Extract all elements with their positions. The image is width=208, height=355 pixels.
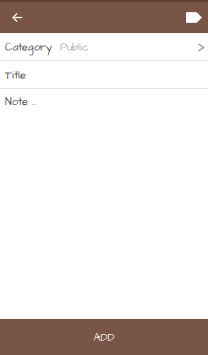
button[interactable]: Tags [183,1,205,34]
button[interactable]: Back [6,1,28,34]
staticText: ADD [93,331,114,345]
staticText: Title [5,68,26,83]
button[interactable]: Note .. [0,89,208,113]
button[interactable]: ADD [0,319,208,355]
button[interactable]: Title [0,61,208,88]
staticText: Note .. [5,95,36,109]
staticText: Public [52,40,89,55]
staticText: Category [5,40,52,55]
button[interactable]: Category [0,33,208,60]
